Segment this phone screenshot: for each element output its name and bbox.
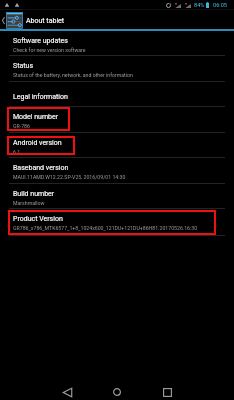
staticText: Product Version	[13, 215, 63, 223]
staticText: GR-786	[13, 123, 30, 129]
staticText: Software updates	[13, 37, 68, 45]
button[interactable]: Software updates	[0, 31, 234, 55]
staticText: Status	[13, 62, 34, 70]
staticText: 06:05	[213, 2, 227, 9]
staticText: Android version	[13, 139, 62, 147]
button[interactable]: Recents	[142, 384, 192, 400]
staticText: Check for new version software	[13, 47, 86, 53]
staticText: Status of the battery, network, and othe…	[13, 72, 133, 78]
button[interactable]: Legal information	[0, 82, 234, 106]
staticText: MAUI.11AMD.W12.22.SP-V25, 2016/09/01 14:…	[13, 174, 126, 180]
staticText: Model number	[13, 113, 59, 121]
button[interactable]: Back	[42, 384, 92, 400]
button[interactable]: Back	[0, 12, 6, 29]
staticText: 84%	[194, 2, 205, 9]
button[interactable]: Model number	[0, 107, 234, 132]
button[interactable]: Product Version	[0, 209, 234, 235]
button[interactable]: Status	[0, 56, 234, 81]
staticText: About tablet	[26, 17, 65, 25]
staticText: GR786_s786_MTK6577_1+8_1024x600_121DU+12…	[13, 225, 198, 231]
staticText: 6.1	[13, 149, 21, 155]
staticText: Marshmallow	[13, 200, 45, 206]
button[interactable]: Home	[92, 384, 142, 400]
staticText: Build number	[13, 190, 55, 198]
staticText: Legal information	[13, 93, 68, 101]
button[interactable]: Settings	[6, 12, 23, 29]
button[interactable]: Build number	[0, 184, 234, 208]
staticText: Baseband version	[13, 164, 69, 172]
button[interactable]: Baseband version	[0, 158, 234, 183]
button[interactable]: Android version	[0, 133, 234, 157]
